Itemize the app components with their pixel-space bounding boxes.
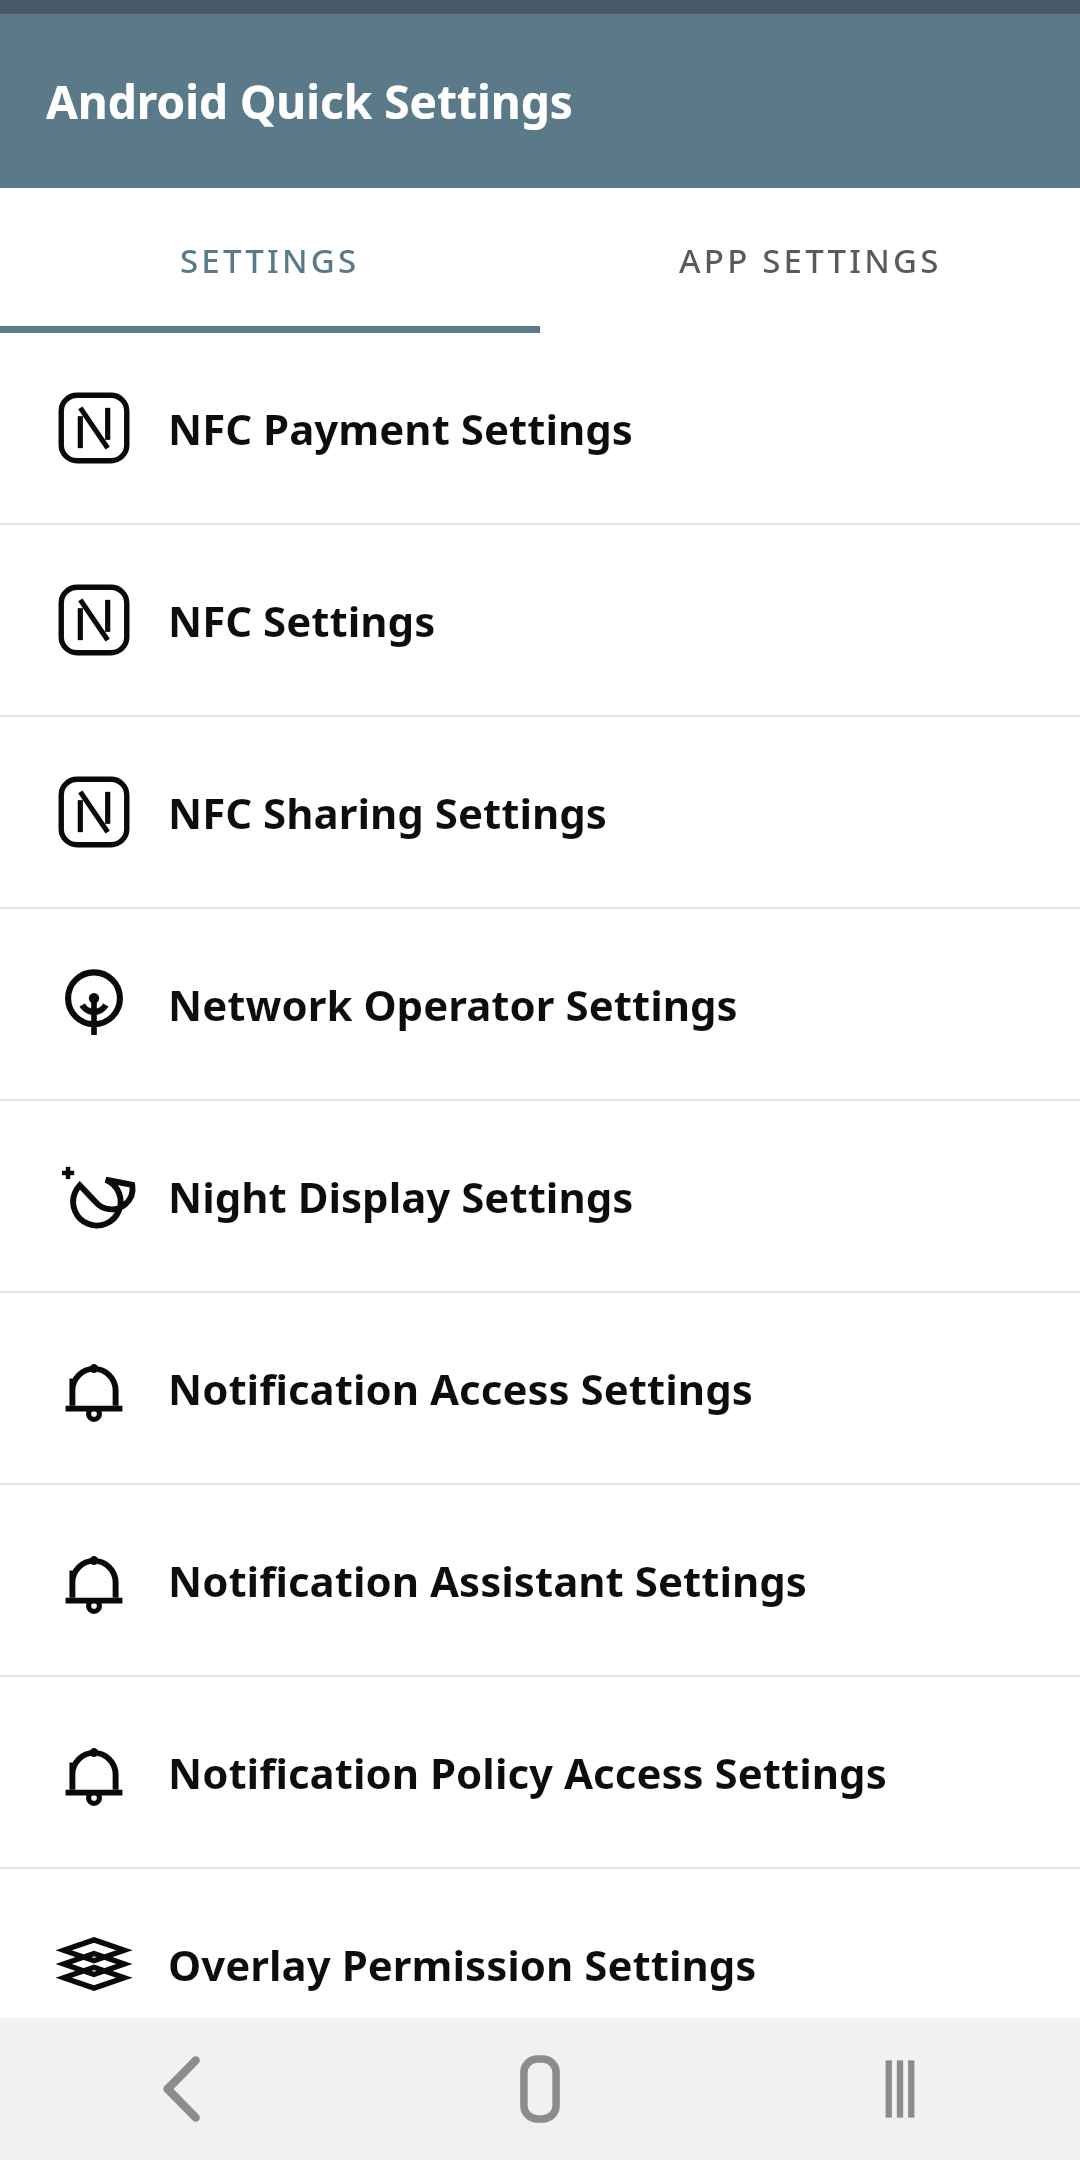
button[interactable]: Back <box>0 2018 360 2160</box>
button[interactable]: Home <box>360 2018 720 2160</box>
staticText: Notification Assistant Settings <box>168 1552 807 1609</box>
button[interactable]: Network Operator Settings <box>0 909 1080 1099</box>
staticText: NFC Sharing Settings <box>168 784 607 841</box>
button[interactable]: NFC Sharing Settings <box>0 717 1080 907</box>
staticText: Night Display Settings <box>168 1168 634 1225</box>
button[interactable]: Night Display Settings <box>0 1101 1080 1291</box>
staticText: Android Quick Settings <box>46 70 573 133</box>
staticText: NFC Payment Settings <box>168 400 633 457</box>
staticText: Notification Policy Access Settings <box>168 1744 887 1801</box>
button[interactable]: NFC Settings <box>0 525 1080 715</box>
button[interactable]: Notification Assistant Settings <box>0 1485 1080 1675</box>
staticText: Network Operator Settings <box>168 976 738 1033</box>
staticText: Notification Access Settings <box>168 1360 753 1417</box>
button[interactable]: APP SETTINGS <box>540 188 1080 333</box>
button[interactable]: Notification Policy Access Settings <box>0 1677 1080 1867</box>
button[interactable]: Notification Access Settings <box>0 1293 1080 1483</box>
staticText: Overlay Permission Settings <box>168 1936 757 1993</box>
staticText: APP SETTINGS <box>679 238 942 283</box>
button[interactable]: NFC Payment Settings <box>0 333 1080 523</box>
button[interactable]: Overlay Permission Settings <box>0 1869 1080 2059</box>
button[interactable]: SETTINGS <box>0 188 540 333</box>
staticText: NFC Settings <box>168 592 436 649</box>
button[interactable]: Recent apps <box>720 2018 1080 2160</box>
staticText: SETTINGS <box>180 238 360 283</box>
